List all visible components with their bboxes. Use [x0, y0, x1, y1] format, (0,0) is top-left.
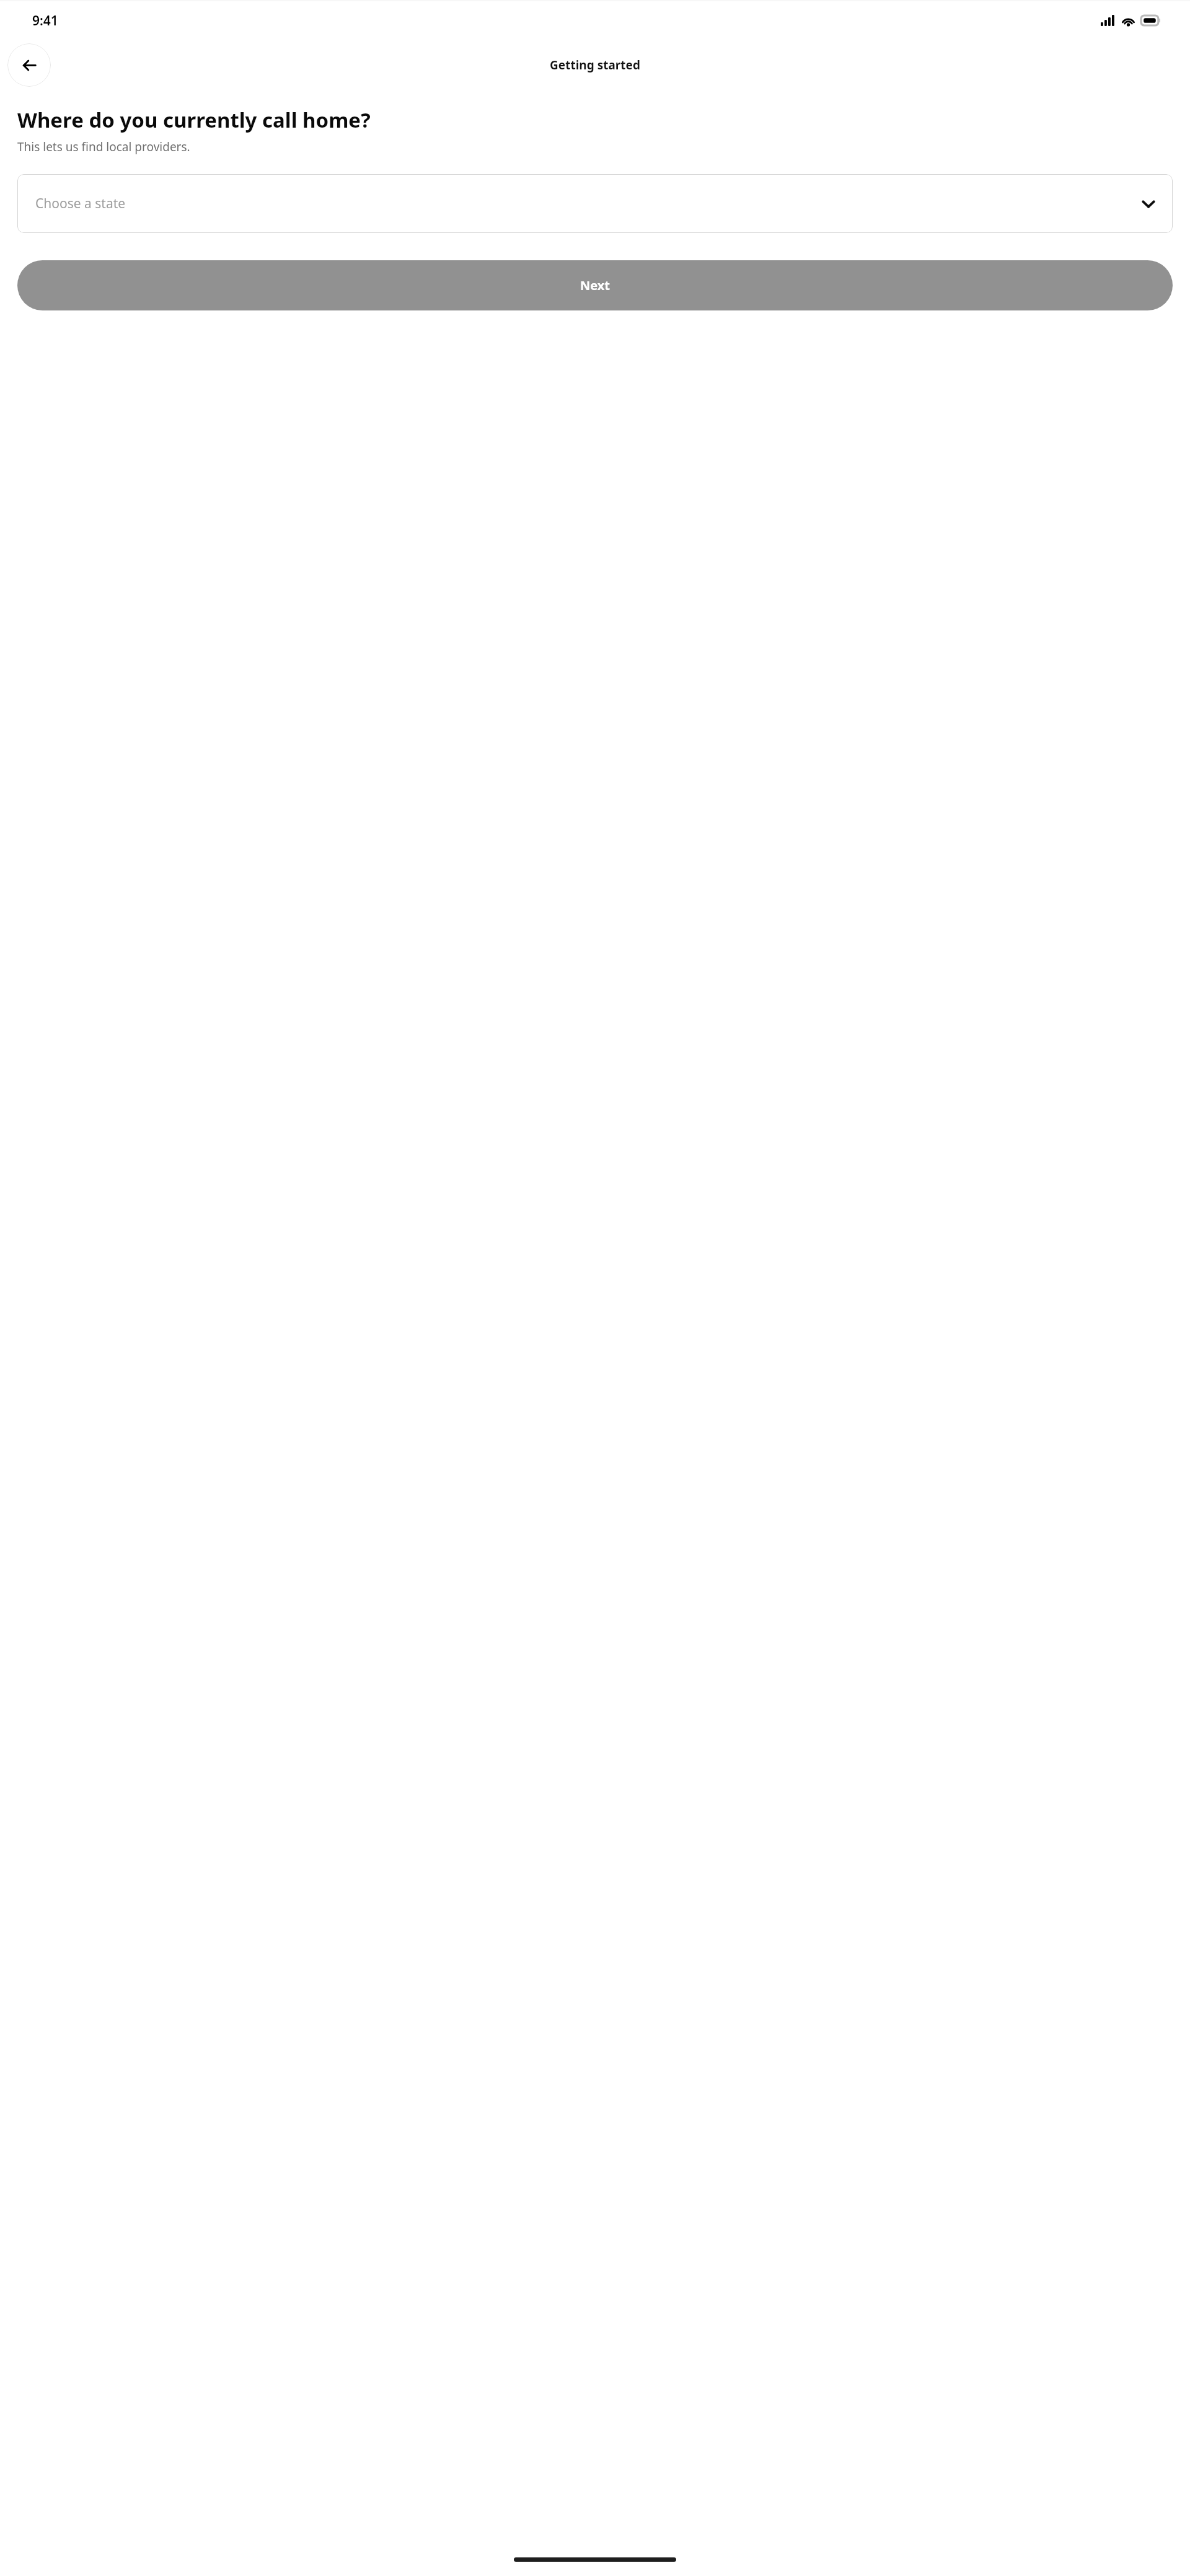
other: Open state list	[1140, 196, 1157, 212]
button[interactable]: Next	[17, 260, 1173, 310]
staticText: Getting started	[550, 57, 640, 73]
staticText: Where do you currently call home?	[17, 106, 1173, 134]
staticText: 9:41	[32, 12, 58, 30]
staticText: This lets us find local providers.	[17, 139, 1173, 155]
button[interactable]: Choose a state	[17, 174, 1173, 233]
staticText: Choose a state	[35, 195, 126, 213]
button[interactable]: Back	[7, 43, 51, 87]
staticText: Next	[580, 277, 610, 294]
